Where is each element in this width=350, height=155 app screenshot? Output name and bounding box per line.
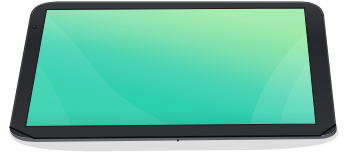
button[interactable]: Tablet device showing green gradient wal…: [0, 0, 350, 155]
